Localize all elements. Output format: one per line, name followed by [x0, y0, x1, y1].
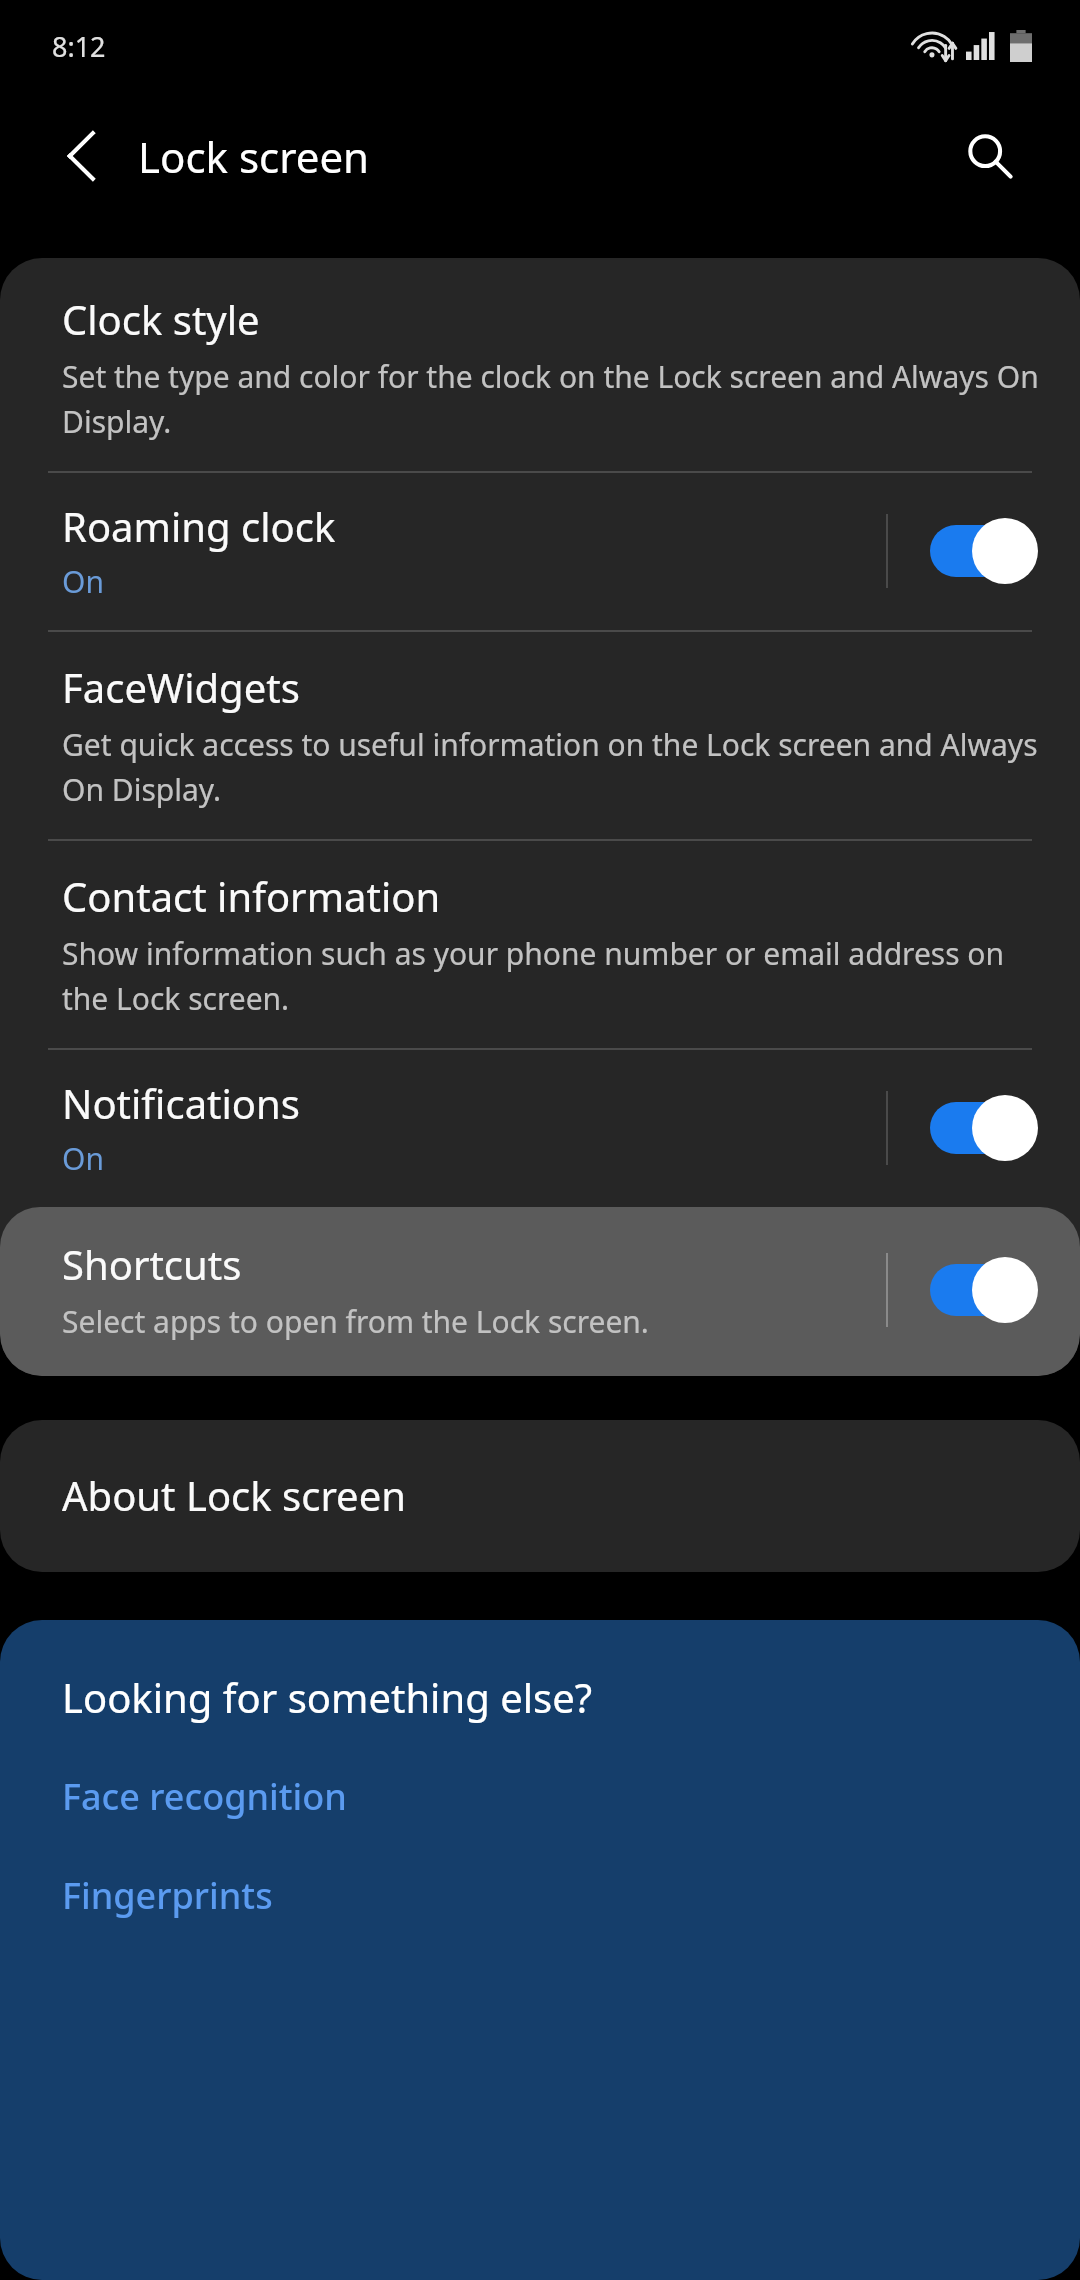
button[interactable]: FaceWidgets [0, 632, 1080, 839]
button[interactable]: Search [938, 104, 1042, 208]
button[interactable]: About Lock screen [0, 1420, 1080, 1572]
staticText: Fingerprints [62, 1871, 273, 1920]
staticText: Face recognition [62, 1772, 347, 1821]
button[interactable]: Clock style [0, 264, 1080, 471]
staticText: Get quick access to useful information o… [62, 724, 1040, 809]
staticText: FaceWidgets [62, 660, 300, 714]
staticText: About Lock screen [62, 1468, 406, 1522]
staticText: Looking for something else? [62, 1670, 593, 1724]
button[interactable]: Contact information [0, 841, 1080, 1048]
button[interactable]: Notifications [0, 1050, 1080, 1207]
staticText: Set the type and color for the clock on … [62, 356, 1040, 441]
staticText: Select apps to open from the Lock screen… [62, 1301, 649, 1342]
button[interactable]: Shortcuts [0, 1207, 1080, 1376]
button[interactable]: Roaming clock [0, 473, 1080, 630]
staticText: On [62, 561, 104, 602]
staticText: 8:12 [52, 28, 106, 65]
button[interactable]: Toggle on [928, 514, 1040, 588]
staticText: Shortcuts [62, 1237, 242, 1291]
button[interactable]: Fingerprints [62, 1867, 273, 1924]
button[interactable]: Toggle on [928, 1091, 1040, 1165]
staticText: Notifications [62, 1076, 300, 1130]
staticText: Contact information [62, 869, 441, 923]
button[interactable]: Toggle on [928, 1253, 1040, 1327]
staticText: Clock style [62, 292, 260, 346]
staticText: Show information such as your phone numb… [62, 933, 1040, 1018]
button[interactable]: Face recognition [62, 1768, 347, 1825]
staticText: Lock screen [138, 128, 370, 185]
staticText: Roaming clock [62, 499, 336, 553]
button[interactable]: Back [34, 108, 130, 204]
staticText: On [62, 1138, 104, 1179]
